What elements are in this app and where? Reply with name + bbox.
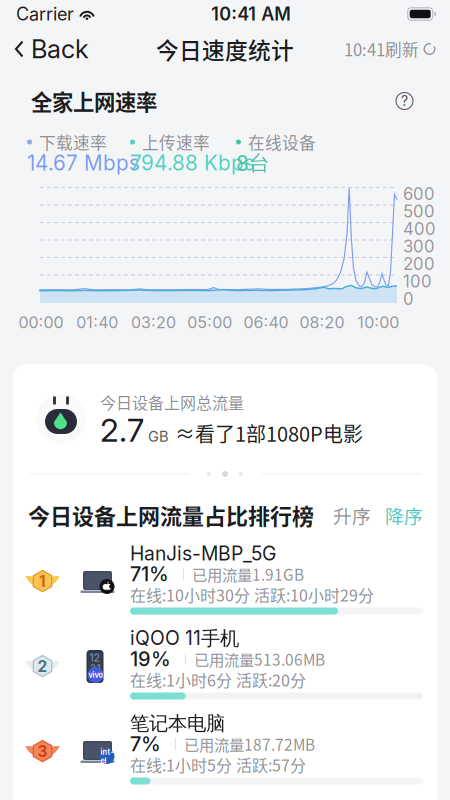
staticText: 升序 — [333, 501, 371, 528]
staticText: 2.7 — [100, 411, 144, 449]
staticText: 下载速率 — [39, 130, 107, 154]
staticText: 已用流量187.72MB — [184, 733, 315, 755]
staticText: 01:40 — [76, 313, 118, 332]
staticText: GB — [148, 427, 169, 445]
staticText: ≈看了1部1080P电影 — [175, 418, 363, 447]
staticText: 8台 — [236, 150, 270, 176]
staticText: intel — [100, 748, 113, 765]
staticText: 在线:1小时6分 活跃:20分 — [130, 668, 306, 691]
staticText: 14.67 Mbps — [27, 150, 140, 175]
staticText: 降序 — [385, 501, 423, 528]
staticText: 08:20 — [300, 313, 345, 332]
button[interactable]: Back — [0, 27, 89, 71]
button[interactable]: 10:41刷新 — [344, 30, 450, 68]
staticText: 在线:10小时30分 活跃:10小时29分 — [130, 583, 374, 606]
staticText: 1 — [39, 572, 46, 591]
staticText: HanJis-MBP_5G — [130, 542, 276, 565]
button[interactable]: Help — [396, 92, 413, 109]
staticText: 19% — [130, 647, 171, 671]
staticText: 7% — [130, 732, 161, 756]
staticText: 300 — [403, 236, 435, 257]
button[interactable]: 升序 — [333, 498, 371, 531]
staticText: iQOO 11手机 — [130, 626, 239, 651]
staticText: 在线:1小时5分 活跃:57分 — [130, 753, 306, 776]
staticText: 10:00 — [357, 313, 399, 332]
button[interactable]: 3 — [13, 709, 437, 794]
staticText: 71% — [130, 562, 169, 586]
staticText: 03:20 — [131, 313, 176, 332]
staticText: 794.88 Kbps — [130, 150, 255, 175]
staticText: 在线设备 — [248, 130, 316, 154]
staticText: 今日设备上网流量占比排行榜 — [28, 499, 314, 531]
button[interactable]: 1 — [13, 539, 437, 624]
staticText: 10:41 AM — [211, 3, 291, 25]
staticText: 已用流量513.06MB — [194, 648, 325, 670]
staticText: ? — [401, 92, 408, 109]
staticText: 400 — [403, 219, 436, 239]
staticText: 12 — [89, 651, 100, 664]
staticText: 100 — [403, 271, 432, 292]
staticText: 500 — [403, 201, 435, 222]
staticText: 全家上网速率 — [31, 86, 157, 116]
staticText: 200 — [403, 254, 435, 274]
staticText: 已用流量1.91GB — [192, 563, 304, 585]
staticText: 10:41刷新 — [344, 37, 419, 61]
staticText: Back — [31, 34, 89, 64]
staticText: 05:00 — [187, 313, 232, 332]
button[interactable]: 降序 — [385, 498, 423, 531]
staticText: 00:00 — [19, 313, 64, 332]
staticText: 笔记本电脑 — [130, 711, 225, 736]
staticText: 06:40 — [243, 313, 288, 332]
staticText: Carrier — [16, 3, 74, 25]
staticText: 今日速度统计 — [156, 33, 294, 65]
button[interactable]: 2 — [13, 624, 437, 709]
staticText: 今日设备上网总流量 — [100, 390, 244, 414]
staticText: 上传速率 — [142, 130, 210, 154]
staticText: 0 — [403, 289, 414, 309]
staticText: 3 — [37, 742, 47, 761]
staticText: 31 — [89, 662, 100, 675]
staticText: 2 — [37, 657, 47, 676]
staticText: 600 — [403, 184, 435, 204]
staticText: vivo — [88, 671, 102, 679]
